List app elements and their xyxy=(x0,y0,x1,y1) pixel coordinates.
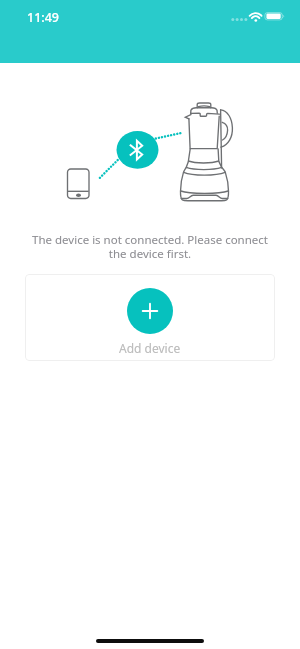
staticText: Add device xyxy=(119,340,181,356)
staticText: 11:49 xyxy=(27,9,60,26)
other: Add device xyxy=(127,288,173,334)
staticText: The device is not connected. Please conn… xyxy=(26,232,274,261)
button[interactable]: Add device xyxy=(25,274,275,361)
